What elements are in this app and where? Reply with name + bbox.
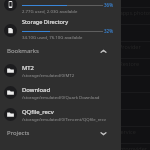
staticText: 32%: [104, 28, 113, 34]
button[interactable]: Root Directory: [0, 0, 121, 17]
button[interactable]: Bookmarks: [0, 43, 121, 59]
button[interactable]: QQfile_recv: [0, 103, 121, 125]
staticText: MusicPlayerShellService: [74, 128, 136, 135]
staticText: 36%: [104, 2, 113, 8]
staticText: Storage Directory: [22, 18, 68, 26]
staticText: MT2: [22, 64, 34, 72]
staticText: Projects: [7, 129, 30, 137]
staticText: /storage/emulated/0/Quark Download: [22, 94, 100, 100]
staticText: Bookmarks: [7, 47, 39, 55]
button[interactable]: Storage Directory: [0, 17, 121, 43]
staticText: 34.10G used, 76.10G available: [22, 34, 83, 40]
other: Expand: [100, 130, 107, 137]
staticText: /storage/emulated/0/Tencent/QQfile_recv: [22, 116, 107, 122]
staticText: QQfile_recv: [22, 108, 54, 116]
staticText: MediaStorageProvider: [83, 43, 141, 50]
staticText: com.miui.contentprovider: [80, 145, 148, 150]
staticText: AppBackupRestore: [90, 60, 140, 67]
button[interactable]: Projects: [0, 125, 121, 141]
staticText: 2.77G used, 2.03G available: [22, 8, 78, 14]
button[interactable]: MT2: [0, 59, 121, 81]
staticText: /storage/emulated/0/MT2: [22, 72, 75, 78]
staticText: Download: [22, 86, 51, 94]
button[interactable]: Download: [0, 81, 121, 103]
staticText: com.google.android.apps.photos: [66, 9, 150, 16]
other: Collapse: [100, 48, 107, 55]
